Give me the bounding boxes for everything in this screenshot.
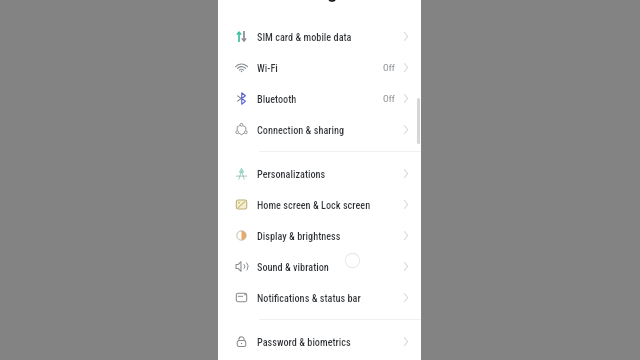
button[interactable]: Sound & vibration [218,251,421,282]
button[interactable]: Bluetooth [218,83,421,114]
staticText: Settings [278,0,348,4]
staticText: Bluetooth [257,93,297,105]
staticText: Off [383,62,395,73]
staticText: Personalizations [257,168,326,180]
button[interactable]: Home screen & Lock screen [218,189,421,220]
staticText: Connection & sharing [257,124,345,136]
staticText: Home screen & Lock screen [257,199,371,211]
staticText: Wi-Fi [257,62,278,74]
button[interactable]: Notifications & status bar [218,282,421,313]
button[interactable]: Display & brightness [218,220,421,251]
staticText: Off [383,93,395,104]
staticText: SIM card & mobile data [257,31,352,43]
staticText: Password & biometrics [257,336,351,348]
staticText: Display & brightness [257,230,341,242]
staticText: Notifications & status bar [257,292,361,304]
button[interactable]: Personalizations [218,158,421,189]
button[interactable]: Password & biometrics [218,326,421,357]
button[interactable]: Connection & sharing [218,114,421,145]
staticText: Sound & vibration [257,261,329,273]
button[interactable]: Wi-Fi [218,52,421,83]
button[interactable]: SIM card & mobile data [218,21,421,52]
